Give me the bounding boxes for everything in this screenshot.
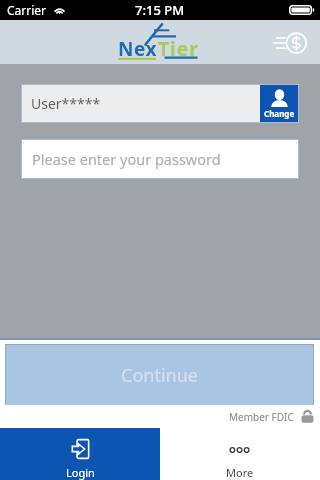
button[interactable]: Continue <box>6 345 313 405</box>
button[interactable]: More <box>160 428 320 480</box>
button[interactable]: Transfer money <box>271 26 309 60</box>
button[interactable]: Login <box>0 428 160 480</box>
staticText: Change <box>264 108 295 119</box>
staticText: Member FDIC <box>229 410 294 424</box>
staticText: More <box>226 465 254 480</box>
staticText: Login <box>66 465 95 480</box>
button[interactable]: Change <box>260 84 299 123</box>
staticText: User***** <box>31 94 101 113</box>
button[interactable]: User***** <box>21 84 260 123</box>
staticText: Nex <box>118 36 158 62</box>
button[interactable]: Please enter your password <box>21 139 299 179</box>
staticText: Tier <box>158 36 199 62</box>
staticText: Carrier <box>7 2 47 18</box>
staticText: Continue <box>121 363 198 388</box>
staticText: 7:15 PM <box>135 1 185 19</box>
staticText: Please enter your password <box>32 149 221 169</box>
